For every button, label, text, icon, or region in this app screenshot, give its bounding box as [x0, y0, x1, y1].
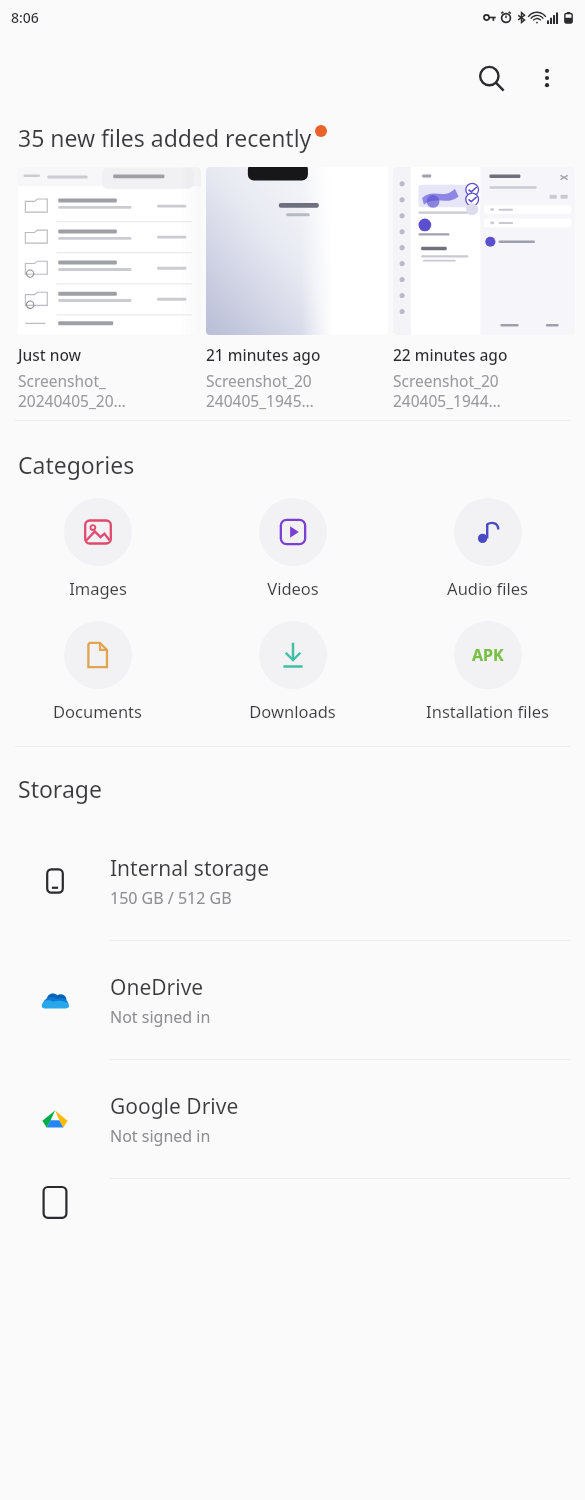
button[interactable]: 35 new files added recently	[18, 122, 327, 153]
staticText: Images	[69, 577, 127, 599]
staticText: Downloads	[249, 700, 336, 722]
staticText: Documents	[53, 700, 142, 722]
button[interactable]: Images	[0, 498, 195, 599]
staticText: Not signed in	[110, 1006, 211, 1028]
staticText: Categories	[18, 449, 135, 480]
button[interactable]	[0, 1179, 585, 1219]
staticText: Screenshot_20 240405_1945…	[206, 370, 314, 412]
button[interactable]: More options	[519, 50, 575, 106]
staticText: Audio files	[447, 577, 528, 599]
button[interactable]: Audio files	[390, 498, 585, 599]
staticText: 8:06	[11, 8, 39, 27]
button[interactable]: OneDrive	[0, 941, 585, 1059]
button[interactable]: Just now	[18, 167, 201, 412]
staticText: Screenshot_ 20240405_20…	[18, 370, 126, 412]
staticText: Installation files	[426, 700, 549, 722]
staticText: Google Drive	[110, 1092, 239, 1121]
staticText: 22 minutes ago	[393, 344, 508, 365]
staticText: Screenshot_20 240405_1944…	[393, 370, 501, 412]
staticText: 35 new files added recently	[18, 122, 312, 153]
button[interactable]: Google Drive	[0, 1060, 585, 1178]
staticText: Storage	[18, 773, 102, 804]
staticText: 150 GB / 512 GB	[110, 887, 232, 909]
button[interactable]: Search	[463, 50, 519, 106]
button[interactable]: Internal storage	[0, 822, 585, 940]
button[interactable]: Videos	[195, 498, 390, 599]
button[interactable]: 22 minutes ago	[393, 167, 575, 412]
button[interactable]: Documents	[0, 621, 195, 722]
staticText: 21 minutes ago	[206, 344, 321, 365]
staticText: Not signed in	[110, 1125, 211, 1147]
button[interactable]: Downloads	[195, 621, 390, 722]
staticText: Internal storage	[110, 854, 269, 883]
button[interactable]: 21 minutes ago	[206, 167, 388, 412]
staticText: Just now	[18, 344, 82, 365]
staticText: APK	[472, 644, 504, 666]
staticText: Videos	[267, 577, 319, 599]
button[interactable]: APK	[390, 621, 585, 722]
staticText: OneDrive	[110, 973, 204, 1002]
